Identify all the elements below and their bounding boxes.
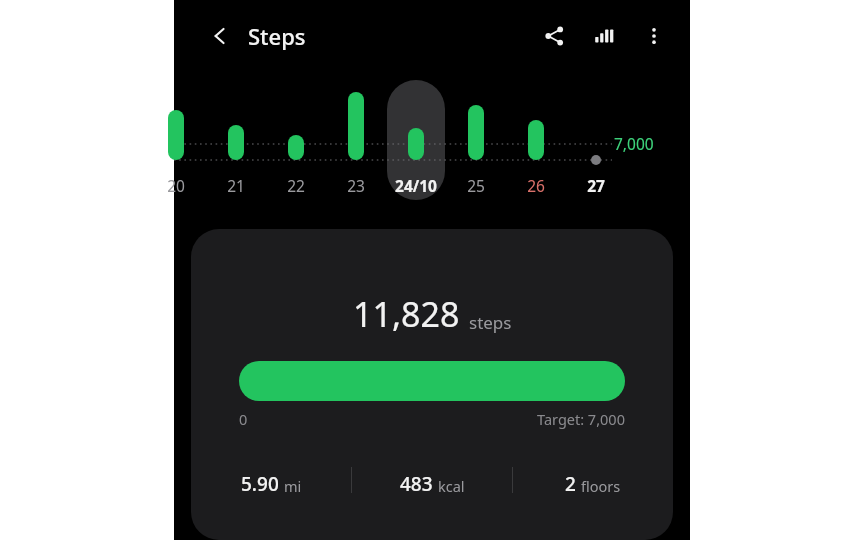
button[interactable]: 23 [326, 172, 386, 198]
staticText: 24/10 [395, 175, 437, 196]
button[interactable]: Back [198, 14, 242, 58]
staticText: 23 [347, 175, 365, 196]
staticText: 25 [467, 175, 485, 196]
button[interactable]: 22 [266, 172, 326, 198]
button[interactable]: 5.90 [191, 463, 351, 497]
staticText: 11,828 [353, 291, 460, 337]
button[interactable]: 483 [352, 463, 512, 497]
staticText: 26 [527, 175, 545, 196]
button[interactable]: More options [632, 14, 676, 58]
button[interactable]: Charts [582, 14, 626, 58]
staticText: floors [581, 476, 621, 496]
staticText: 483 [400, 471, 433, 497]
staticText: 7,000 [614, 133, 654, 154]
staticText: 0 [239, 409, 248, 429]
staticText: 21 [227, 175, 245, 196]
button[interactable]: 21 [206, 172, 266, 198]
button[interactable]: Steps [248, 21, 306, 51]
button[interactable]: 24/10 [386, 172, 446, 198]
button[interactable]: 2 [513, 463, 673, 497]
button[interactable]: 20 [146, 172, 206, 198]
button[interactable] [387, 80, 445, 200]
button[interactable]: 11,828 [191, 229, 673, 540]
staticText: Target: 7,000 [537, 409, 625, 429]
button[interactable]: 26 [506, 172, 566, 198]
staticText: 27 [587, 175, 605, 196]
staticText: mi [284, 476, 302, 496]
staticText: steps [469, 311, 512, 334]
staticText: 22 [287, 175, 305, 196]
button[interactable]: 25 [446, 172, 506, 198]
button[interactable]: Share [532, 14, 576, 58]
staticText: 2 [565, 471, 576, 497]
staticText: 5.90 [241, 471, 279, 497]
staticText: Steps [248, 21, 306, 51]
staticText: kcal [438, 476, 465, 496]
button[interactable]: 27 [566, 172, 626, 198]
staticText: 20 [167, 175, 185, 196]
